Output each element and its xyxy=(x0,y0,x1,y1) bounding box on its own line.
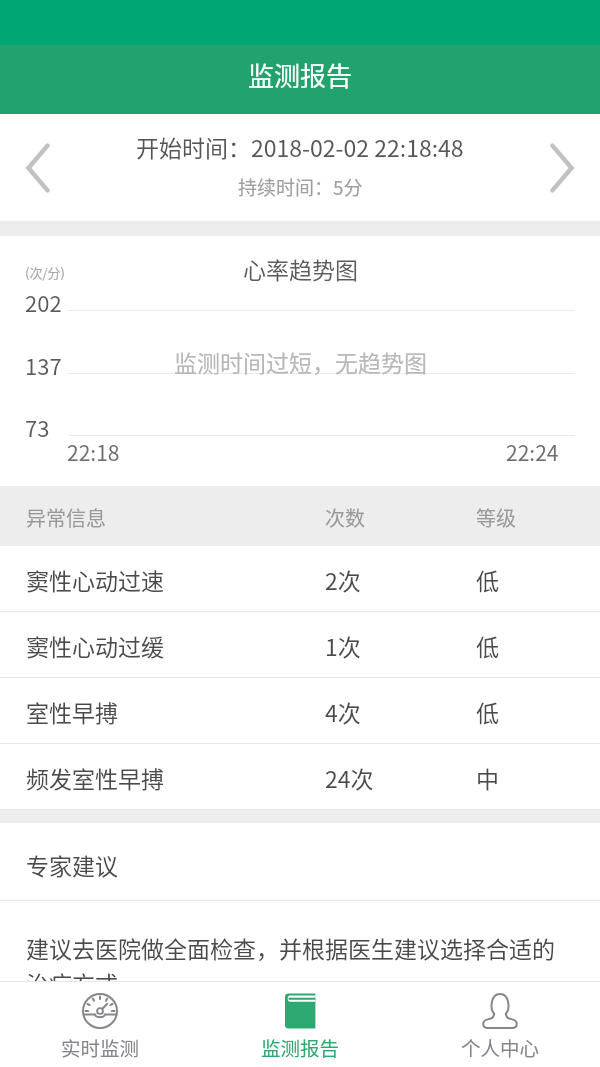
staticText: 低 xyxy=(476,695,499,728)
button[interactable]: 频发室性早搏 xyxy=(0,744,600,810)
staticText: 专家建议 xyxy=(26,848,118,881)
button[interactable]: Next xyxy=(524,114,600,221)
staticText: 频发室性早搏 xyxy=(26,761,164,794)
staticText: 137 xyxy=(25,349,62,381)
staticText: 建议去医院做全面检查，并根据医生建议选择合适的治疗方式 xyxy=(26,931,574,1000)
staticText: 实时监测 xyxy=(61,1033,140,1061)
staticText: 个人中心 xyxy=(461,1033,540,1061)
staticText: 室性早搏 xyxy=(26,695,118,728)
staticText: 等级 xyxy=(476,503,516,532)
button[interactable]: 窦性心动过速 xyxy=(0,546,600,612)
staticText: 开始时间：2018-02-02 22:18:48 xyxy=(136,130,464,163)
staticText: 窦性心动过缓 xyxy=(26,629,164,662)
button[interactable]: 窦性心动过缓 xyxy=(0,612,600,678)
staticText: 次数 xyxy=(325,503,365,532)
button[interactable]: Previous xyxy=(0,114,76,221)
staticText: 中 xyxy=(476,761,499,794)
staticText: 异常信息 xyxy=(26,503,106,532)
staticText: 202 xyxy=(25,286,62,318)
staticText: 监测报告 xyxy=(248,56,353,94)
button[interactable]: 监测报告 xyxy=(200,982,400,1067)
staticText: 1次 xyxy=(325,629,361,662)
staticText: 24次 xyxy=(325,761,374,794)
staticText: 窦性心动过速 xyxy=(26,563,164,596)
staticText: 心率趋势图 xyxy=(243,252,358,285)
staticText: 监测报告 xyxy=(261,1033,340,1061)
staticText: 22:24 xyxy=(506,437,559,467)
button[interactable]: 个人中心 xyxy=(400,982,600,1067)
staticText: 低 xyxy=(476,563,499,596)
staticText: 低 xyxy=(476,629,499,662)
button[interactable]: 实时监测 xyxy=(0,982,200,1067)
staticText: 监测时间过短，无趋势图 xyxy=(174,345,427,378)
staticText: 4次 xyxy=(325,695,361,728)
staticText: 持续时间：5分 xyxy=(238,173,363,201)
staticText: (次/分) xyxy=(25,263,65,282)
staticText: 73 xyxy=(25,411,50,443)
staticText: 22:18 xyxy=(67,437,120,467)
button[interactable]: 室性早搏 xyxy=(0,678,600,744)
staticText: 2次 xyxy=(325,563,361,596)
